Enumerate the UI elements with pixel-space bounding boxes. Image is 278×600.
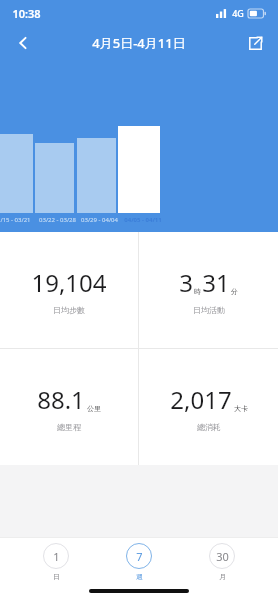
staticText: 4G — [232, 7, 244, 19]
staticText: 月 — [219, 572, 226, 581]
staticText: 88.1 — [37, 383, 85, 416]
staticText: 總里程 — [57, 422, 81, 432]
staticText: 大卡 — [234, 404, 248, 413]
staticText: 日均步數 — [53, 305, 85, 315]
button[interactable]: 1 — [28, 543, 84, 581]
staticText: 週 — [136, 572, 143, 581]
staticText: 日 — [53, 572, 60, 581]
staticText: 10:38 — [12, 6, 41, 21]
staticText: 2,017 — [170, 383, 232, 416]
staticText: 4月5日-4月11日 — [92, 34, 186, 52]
staticText: 分 — [231, 287, 238, 296]
staticText: 1 — [53, 549, 60, 564]
staticText: 日均活動 — [193, 305, 225, 315]
staticText: 3 — [179, 266, 193, 299]
staticText: 公里 — [87, 404, 101, 413]
staticText: 7 — [136, 549, 143, 564]
staticText: 31 — [202, 266, 230, 299]
button[interactable]: 30 — [194, 543, 250, 581]
staticText: 04/05 - 04/11 — [124, 216, 162, 224]
button[interactable]: 88.1 — [0, 349, 138, 465]
button[interactable]: Share — [238, 26, 272, 60]
staticText: 19,104 — [31, 266, 107, 299]
button[interactable]: Back — [6, 26, 40, 60]
button[interactable]: 2,017 — [139, 349, 278, 465]
staticText: 30 — [216, 549, 229, 564]
button[interactable]: 7 — [111, 543, 167, 581]
button[interactable]: 3 — [139, 232, 278, 348]
staticText: /15 - 03/21 — [0, 216, 31, 224]
staticText: 時 — [194, 287, 201, 296]
staticText: 總消耗 — [197, 422, 221, 432]
button[interactable]: 19,104 — [0, 232, 138, 348]
staticText: 03/29 - 04/04 — [81, 216, 118, 224]
staticText: 03/22 - 03/28 — [39, 216, 76, 224]
